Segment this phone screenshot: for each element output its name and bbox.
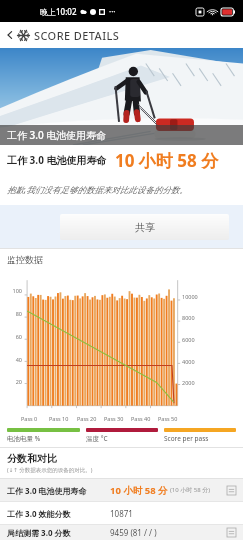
staticText: ··· [109, 6, 116, 17]
staticText: Pass 20 [77, 415, 104, 422]
staticText: 10871 [110, 508, 133, 519]
staticText: 局结测需 3.0 分数 [7, 527, 110, 538]
staticText: (10 小时 58 分) [170, 486, 211, 494]
other: More [227, 528, 236, 537]
staticText: Pass 50 [158, 415, 185, 422]
staticText: SCORE DETAILS [34, 28, 120, 43]
staticText: 分数和对比 [7, 452, 57, 465]
staticText: 工作 3.0 电池使用寿命 [7, 485, 110, 496]
staticText: 10000 [182, 293, 198, 300]
staticText: 100 [2, 287, 22, 294]
staticText: Pass 40 [131, 415, 158, 422]
staticText: 工作 3.0 效能分数 [7, 508, 110, 519]
button[interactable]: 局结测需 3.0 分数 [0, 525, 243, 540]
staticText: 6000 [182, 336, 195, 343]
staticText: Score per pass [164, 434, 236, 443]
staticText: 2000 [182, 379, 195, 386]
staticText: Pass 0 [21, 415, 49, 422]
staticText: 工作 3.0 电池使用寿命 [7, 128, 107, 142]
staticText: 温度 °C [86, 434, 158, 443]
staticText: (↓↑ 分数据表示您的设备的对比。) [7, 466, 93, 474]
button[interactable]: 工作 3.0 电池使用寿命 [0, 479, 243, 501]
other: More [227, 486, 236, 495]
staticText: 工作 3.0 电池使用寿命 [7, 153, 107, 167]
staticText: 10 小时 58 分 [110, 484, 168, 497]
staticText: 60 [2, 333, 22, 340]
staticText: 80 [2, 310, 22, 317]
staticText: 9459 (81 / / ) [110, 527, 157, 538]
staticText: 40 [2, 356, 22, 363]
staticText: 4000 [182, 358, 195, 365]
staticText: 电池电量 % [7, 434, 80, 443]
button[interactable]: Back [3, 28, 17, 42]
staticText: 8000 [182, 314, 195, 321]
staticText: 监控数据 [7, 254, 43, 265]
staticText: 抱歉,我们没有足够的数据来对比此设备的分数。 [7, 184, 188, 196]
staticText: Pass 10 [49, 415, 77, 422]
staticText: Pass 30 [104, 415, 131, 422]
button[interactable]: 工作 3.0 效能分数 [0, 502, 243, 524]
staticText: 20 [2, 378, 22, 385]
staticText: 共享 [135, 221, 155, 234]
staticText: 晚上10:02 [40, 6, 77, 17]
button[interactable]: 共享 [60, 214, 229, 240]
staticText: 10 小时 58 分 [115, 149, 219, 172]
